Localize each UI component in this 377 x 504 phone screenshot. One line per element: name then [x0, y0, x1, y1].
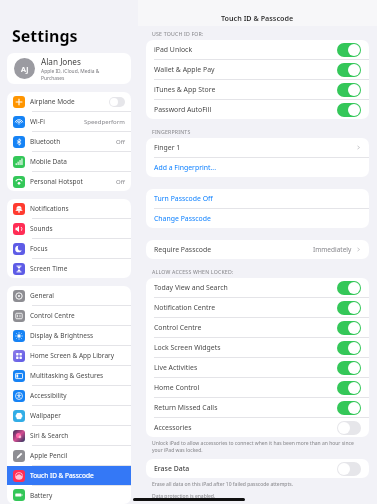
staticText: Wallpaper — [30, 411, 61, 420]
button[interactable]: Battery — [7, 486, 131, 504]
button[interactable]: Home Screen & App Library — [7, 346, 131, 365]
button[interactable]: Airplane Mode toggle — [109, 97, 125, 107]
button[interactable]: Control Centre toggle — [337, 321, 361, 335]
button[interactable]: Return Missed Calls — [146, 398, 369, 417]
staticText: General — [30, 291, 54, 300]
staticText: Touch ID & Passcode — [221, 13, 294, 23]
button[interactable]: Wallpaper — [7, 406, 131, 425]
button[interactable]: Multitasking & Gestures — [7, 366, 131, 385]
staticText: Alan Jones — [41, 56, 81, 67]
button[interactable]: Password AutoFill — [146, 100, 369, 119]
button[interactable]: Live Activities — [146, 358, 369, 377]
button[interactable]: Personal Hotspot — [7, 172, 131, 191]
button[interactable]: Change Passcode — [146, 209, 369, 228]
button[interactable]: Erase Data — [146, 459, 369, 478]
button[interactable]: Mobile Data — [7, 152, 131, 171]
staticText: Speedperform — [84, 118, 125, 126]
staticText: Apple Pencil — [30, 451, 68, 460]
staticText: Settings — [12, 25, 78, 47]
staticText: Notifications — [30, 204, 69, 213]
button[interactable]: Airplane Mode — [7, 92, 131, 111]
button[interactable]: iPad Unlock toggle — [337, 43, 361, 57]
staticText: Accessibility — [30, 391, 67, 400]
staticText: Password AutoFill — [154, 105, 212, 114]
button[interactable]: Live Activities toggle — [337, 361, 361, 375]
staticText: iTunes & App Store — [154, 85, 216, 94]
button[interactable]: iTunes & App Store toggle — [337, 83, 361, 97]
staticText: USE TOUCH ID FOR: — [152, 30, 204, 37]
staticText: Data protection is enabled. — [152, 493, 216, 500]
button[interactable]: Screen Time — [7, 259, 131, 278]
button[interactable]: Notification Centre — [146, 298, 369, 317]
staticText: ALLOW ACCESS WHEN LOCKED: — [152, 268, 234, 275]
staticText: Notification Centre — [154, 303, 216, 312]
staticText: Immediately — [313, 245, 352, 254]
button[interactable]: Touch ID & Passcode — [7, 466, 131, 485]
button[interactable]: General — [7, 286, 131, 305]
staticText: Finger 1 — [154, 143, 181, 152]
staticText: Screen Time — [30, 264, 68, 273]
button[interactable]: Apple Pencil — [7, 446, 131, 465]
button[interactable]: AJ — [7, 53, 131, 84]
staticText: Focus — [30, 244, 48, 253]
staticText: Touch ID & Passcode — [30, 471, 94, 480]
staticText: Mobile Data — [30, 157, 67, 166]
button[interactable]: Siri & Search — [7, 426, 131, 445]
staticText: Bluetooth — [30, 137, 61, 146]
button[interactable]: Require Passcode — [146, 240, 369, 259]
button[interactable]: Home Control — [146, 378, 369, 397]
button[interactable]: Erase Data toggle — [337, 462, 361, 476]
staticText: Control Centre — [30, 311, 75, 320]
button[interactable]: iTunes & App Store — [146, 80, 369, 99]
button[interactable]: Wallet & Apple Pay toggle — [337, 63, 361, 77]
button[interactable]: Home Control toggle — [337, 381, 361, 395]
button[interactable]: Bluetooth — [7, 132, 131, 151]
button[interactable]: Control Centre — [146, 318, 369, 337]
button[interactable]: Control Centre — [7, 306, 131, 325]
button[interactable]: Wallet & Apple Pay — [146, 60, 369, 79]
button[interactable]: Notifications — [7, 199, 131, 218]
button[interactable]: Lock Screen Widgets toggle — [337, 341, 361, 355]
button[interactable]: Sounds — [7, 219, 131, 238]
staticText: Display & Brightness — [30, 331, 94, 340]
button[interactable]: Today View and Search toggle — [337, 281, 361, 295]
staticText: Siri & Search — [30, 431, 69, 440]
staticText: Today View and Search — [154, 283, 228, 292]
button[interactable]: Wi-Fi — [7, 112, 131, 131]
staticText: Turn Passcode Off — [154, 194, 213, 203]
staticText: Battery — [30, 491, 53, 500]
staticText: Control Centre — [154, 323, 202, 332]
button[interactable]: Turn Passcode Off — [146, 189, 369, 208]
button[interactable]: Return Missed Calls toggle — [337, 401, 361, 415]
staticText: Personal Hotspot — [30, 177, 83, 186]
staticText: Home Screen & App Library — [30, 351, 115, 360]
button[interactable]: Add a Fingerprint... — [146, 158, 369, 177]
button[interactable]: Finger 1 — [146, 138, 369, 157]
staticText: Return Missed Calls — [154, 403, 218, 412]
staticText: Accessories — [154, 423, 192, 432]
staticText: Live Activities — [154, 363, 198, 372]
button[interactable]: Password AutoFill toggle — [337, 103, 361, 117]
staticText: Home Control — [154, 383, 200, 392]
staticText: Add a Fingerprint... — [154, 163, 217, 172]
button[interactable]: Today View and Search — [146, 278, 369, 297]
staticText: Apple ID, iCloud, Media & Purchases — [41, 68, 124, 82]
staticText: Erase all data on this iPad after 10 fai… — [152, 481, 293, 488]
button[interactable]: Lock Screen Widgets — [146, 338, 369, 357]
staticText: Require Passcode — [154, 245, 212, 254]
staticText: Off — [116, 138, 125, 146]
button[interactable]: iPad Unlock — [146, 40, 369, 59]
button[interactable]: Accessories toggle — [337, 421, 361, 435]
staticText: Erase Data — [154, 464, 190, 473]
staticText: Off — [116, 178, 125, 186]
staticText: FINGERPRINTS — [152, 128, 191, 135]
staticText: Multitasking & Gestures — [30, 371, 104, 380]
button[interactable]: Accessibility — [7, 386, 131, 405]
staticText: Sounds — [30, 224, 53, 233]
staticText: AJ — [21, 64, 29, 74]
button[interactable]: Notification Centre toggle — [337, 301, 361, 315]
button[interactable]: Focus — [7, 239, 131, 258]
button[interactable]: Accessories — [146, 418, 369, 437]
button[interactable]: Display & Brightness — [7, 326, 131, 345]
staticText: iPad Unlock — [154, 45, 193, 54]
